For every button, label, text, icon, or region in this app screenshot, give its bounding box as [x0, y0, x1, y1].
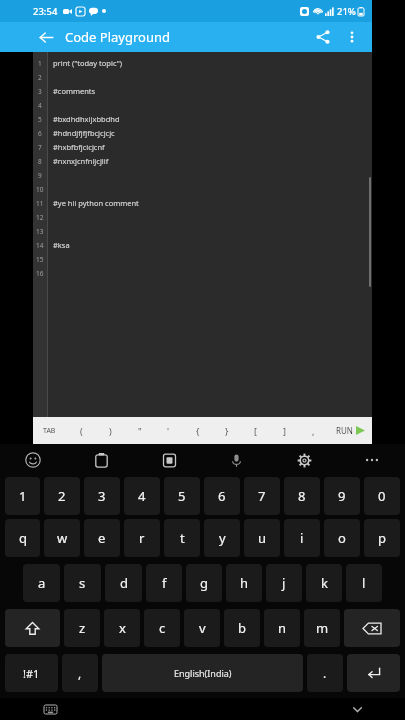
button[interactable]: 6 — [204, 477, 240, 515]
button[interactable]: Enter — [347, 654, 400, 692]
button[interactable]: Share — [310, 24, 336, 50]
staticText: 5 — [38, 115, 42, 124]
staticText: 2 — [38, 73, 42, 82]
button[interactable]: ' — [154, 417, 183, 444]
button[interactable]: h — [226, 564, 262, 602]
staticText: . — [323, 665, 327, 681]
staticText: 5 — [178, 487, 186, 505]
button[interactable]: Backspace — [344, 609, 400, 647]
button[interactable]: Clipboard — [90, 449, 112, 471]
button[interactable]: g — [186, 564, 222, 602]
button[interactable]: ( — [66, 417, 96, 444]
button[interactable]: r — [124, 519, 160, 557]
staticText: g — [200, 574, 208, 592]
button[interactable]: 9 — [324, 477, 360, 515]
staticText: w — [57, 529, 68, 547]
button[interactable]: Back — [33, 24, 59, 50]
button[interactable]: ) — [96, 417, 125, 444]
button[interactable]: b — [224, 609, 260, 647]
button[interactable]: 4 — [124, 477, 160, 515]
staticText: i — [300, 529, 304, 547]
button[interactable]: q — [5, 519, 40, 557]
button[interactable]: e — [84, 519, 120, 557]
button[interactable]: k — [306, 564, 342, 602]
staticText: n — [278, 619, 287, 637]
button[interactable]: 5 — [164, 477, 200, 515]
staticText: h — [240, 574, 249, 592]
staticText: 2 — [58, 487, 66, 505]
button[interactable]: f — [146, 564, 182, 602]
button[interactable]: Keyboard — [40, 699, 60, 719]
staticText: ) — [109, 425, 112, 437]
button[interactable]: 7 — [244, 477, 280, 515]
staticText: m — [316, 619, 329, 637]
button[interactable]: Shift — [5, 609, 60, 647]
button[interactable]: l — [346, 564, 382, 602]
button[interactable]: Emoji — [22, 449, 44, 471]
staticText: d — [120, 574, 128, 592]
button[interactable]: x — [104, 609, 140, 647]
button[interactable]: !#1 — [5, 654, 58, 692]
button[interactable]: ] — [270, 417, 299, 444]
staticText: 11 — [36, 199, 44, 208]
button[interactable]: More — [361, 449, 383, 471]
button[interactable]: 3 — [84, 477, 120, 515]
button[interactable]: English(India) — [102, 654, 303, 692]
staticText: 12 — [36, 213, 44, 222]
staticText: q — [19, 529, 27, 547]
button[interactable]: } — [212, 417, 241, 444]
staticText: #nxnxjcnfnljcjlif — [53, 156, 109, 166]
button[interactable]: Stickers — [158, 449, 180, 471]
button[interactable]: 1 — [5, 477, 40, 515]
button[interactable]: u — [244, 519, 280, 557]
button[interactable]: j — [266, 564, 302, 602]
staticText: 4 — [138, 487, 146, 505]
button[interactable]: c — [144, 609, 180, 647]
button[interactable]: 2 — [44, 477, 80, 515]
staticText: 0 — [378, 487, 386, 505]
button[interactable]: o — [324, 519, 360, 557]
button[interactable]: , — [62, 654, 98, 692]
staticText: #comments — [53, 86, 96, 96]
staticText: s — [79, 574, 86, 592]
button[interactable]: y — [204, 519, 240, 557]
button[interactable]: w — [44, 519, 80, 557]
button[interactable]: More options — [340, 25, 364, 49]
button[interactable]: n — [264, 609, 300, 647]
button[interactable]: . — [307, 654, 343, 692]
button[interactable]: 8 — [284, 477, 320, 515]
button[interactable]: z — [64, 609, 100, 647]
button[interactable]: TAB — [33, 417, 66, 444]
staticText: 16 — [36, 269, 44, 278]
button[interactable]: v — [184, 609, 220, 647]
staticText: ( — [80, 425, 83, 437]
staticText: 10 — [36, 185, 44, 194]
button[interactable]: i — [284, 519, 320, 557]
staticText: a — [38, 574, 46, 592]
button[interactable]: s — [64, 564, 101, 602]
button[interactable]: a — [23, 564, 60, 602]
button[interactable]: 0 — [364, 477, 400, 515]
staticText: #ksa — [53, 240, 70, 250]
button[interactable]: p — [364, 519, 400, 557]
staticText: 23:54 — [33, 5, 58, 18]
button[interactable]: RUN — [328, 417, 372, 444]
staticText: z — [79, 619, 86, 637]
button[interactable]: t — [164, 519, 200, 557]
staticText: y — [219, 529, 226, 547]
staticText: x — [119, 619, 126, 637]
button[interactable]: Voice input — [225, 449, 247, 471]
button[interactable]: " — [125, 417, 154, 444]
staticText: RUN — [336, 425, 353, 436]
button[interactable]: { — [183, 417, 212, 444]
staticText: , — [78, 665, 82, 681]
button[interactable]: Keyboard settings — [293, 449, 315, 471]
button[interactable]: , — [299, 417, 328, 444]
button[interactable]: m — [304, 609, 340, 647]
button[interactable]: d — [105, 564, 142, 602]
staticText: 7 — [258, 487, 266, 505]
button[interactable]: [ — [241, 417, 270, 444]
staticText: ] — [283, 425, 286, 437]
button[interactable]: Hide keyboard — [347, 699, 367, 719]
staticText: #bxdhdhxijxbbdhd — [53, 114, 120, 124]
